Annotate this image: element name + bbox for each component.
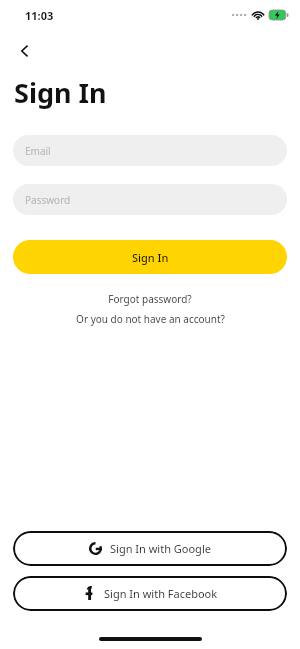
button[interactable]: Or you do not have an account? [0, 312, 300, 326]
button[interactable]: Email [13, 135, 287, 166]
staticText: Sign In [14, 74, 107, 111]
staticText: Sign In [132, 250, 169, 265]
staticText: Password [25, 193, 71, 207]
button[interactable]: Forgot password? [0, 292, 300, 306]
staticText: 11:03 [25, 8, 54, 23]
button[interactable]: Sign In [13, 240, 287, 274]
staticText: Email [25, 144, 51, 158]
button[interactable]: Password [13, 184, 287, 215]
button[interactable]: Sign In with Facebook [13, 576, 287, 611]
button[interactable]: Sign In with Google [13, 531, 287, 566]
staticText: Sign In with Google [110, 541, 211, 556]
staticText: Sign In with Facebook [104, 586, 218, 601]
staticText: Or you do not have an account? [76, 312, 225, 326]
button[interactable]: Back [8, 34, 42, 68]
staticText: Forgot password? [108, 292, 192, 306]
